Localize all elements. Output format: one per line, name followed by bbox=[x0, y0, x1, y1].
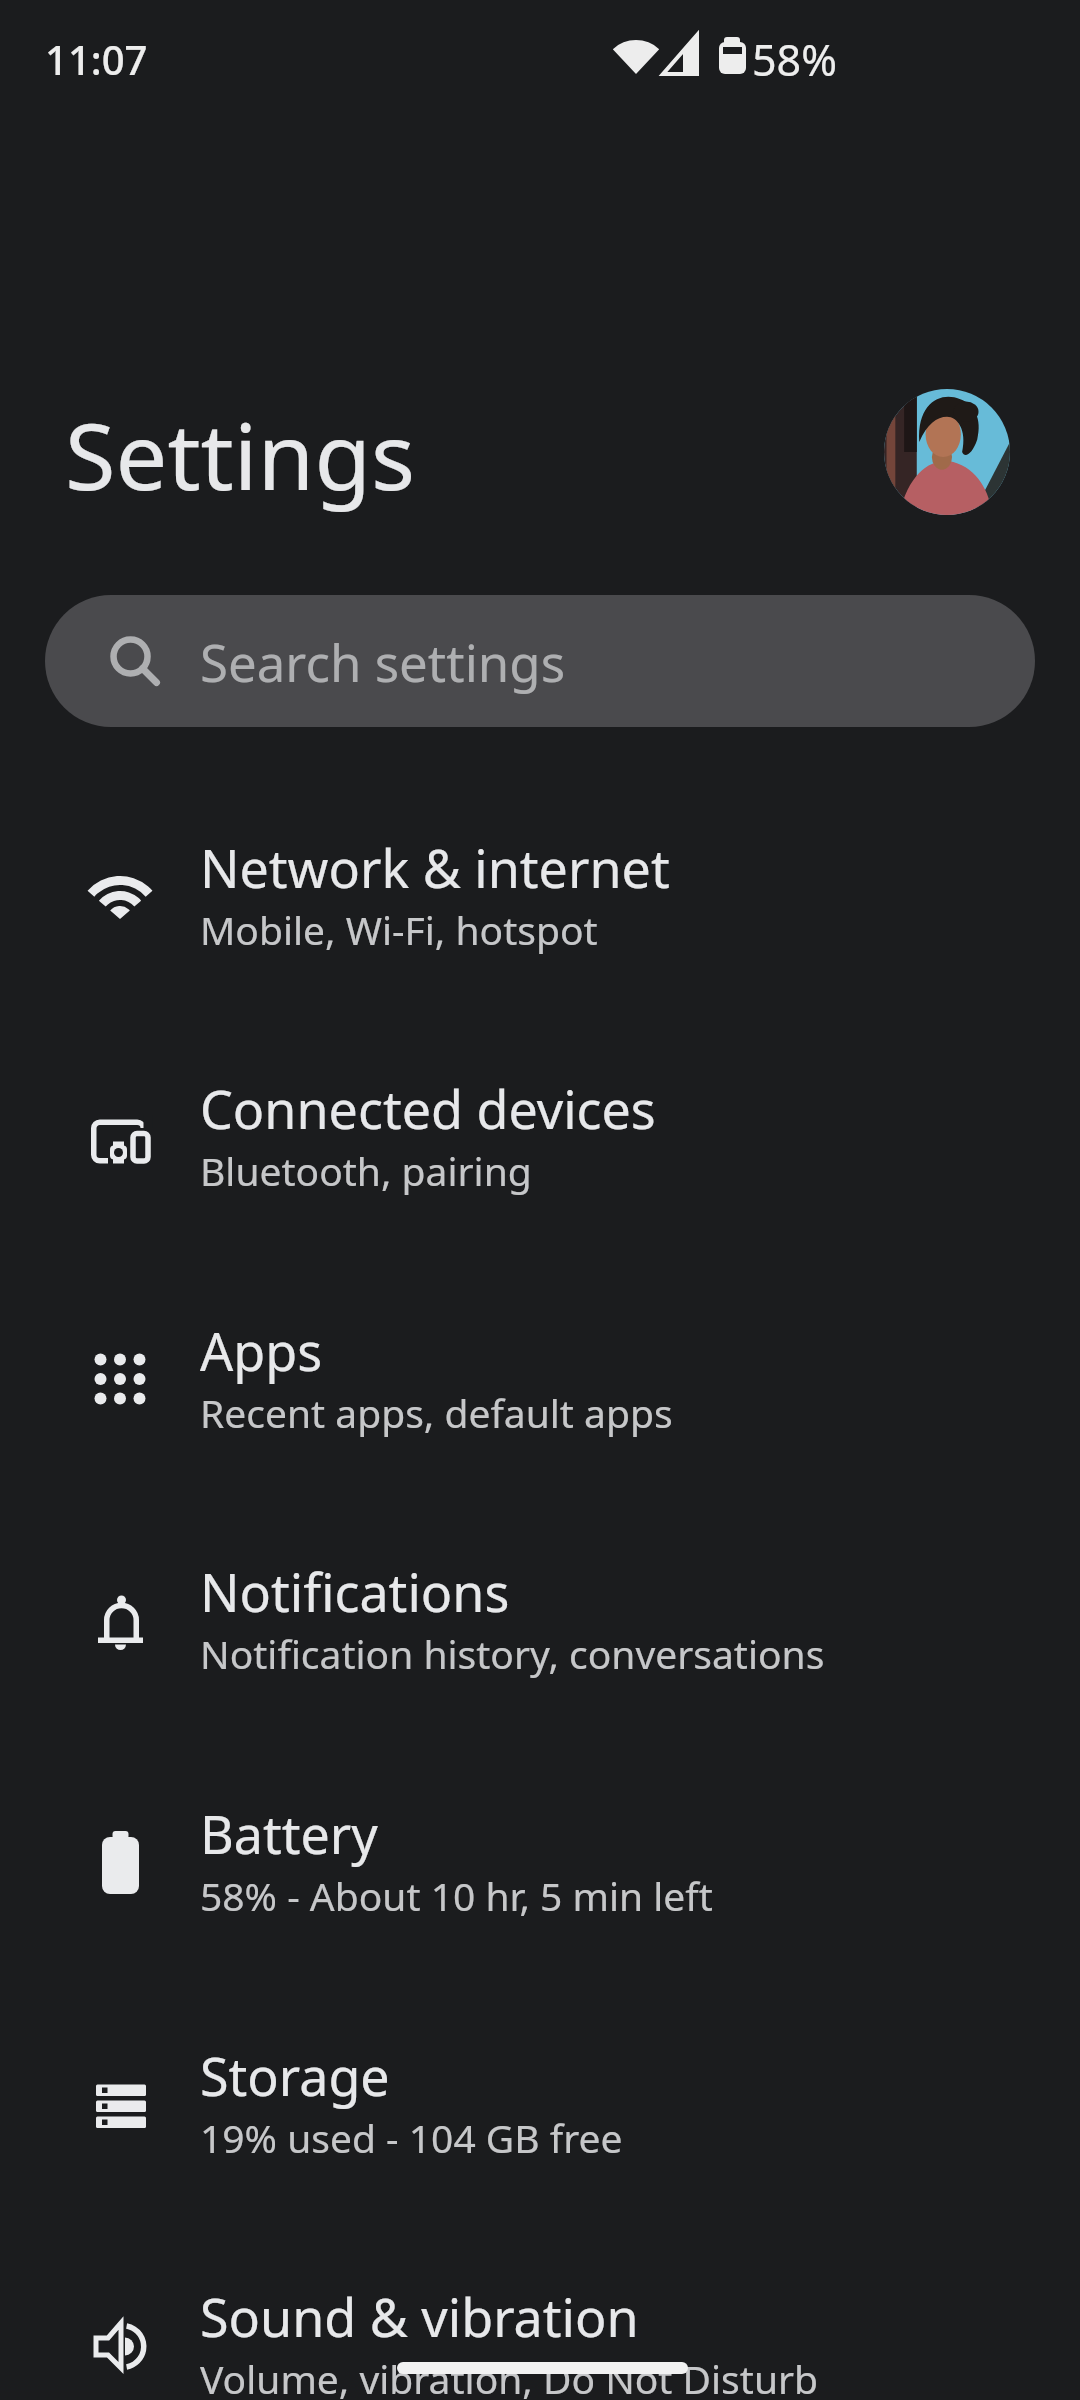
staticText: Mobile, Wi-Fi, hotspot bbox=[200, 903, 598, 956]
staticText: Network & internet bbox=[200, 832, 670, 903]
staticText: 58% bbox=[752, 30, 837, 89]
staticText: Volume, vibration, Do Not Disturb bbox=[200, 2352, 819, 2400]
staticText: Settings bbox=[65, 392, 416, 517]
button[interactable] bbox=[884, 389, 1010, 515]
staticText: 58% - About 10 hr, 5 min left bbox=[200, 1869, 713, 1922]
button[interactable]: Apps bbox=[0, 1263, 1080, 1505]
button[interactable]: Search settings bbox=[45, 595, 1035, 727]
staticText: Sound & vibration bbox=[200, 2281, 639, 2352]
staticText: 11:07 bbox=[45, 32, 148, 86]
staticText: Bluetooth, pairing bbox=[200, 1144, 532, 1197]
button[interactable]: Battery bbox=[0, 1746, 1080, 1988]
button[interactable]: Notifications bbox=[0, 1504, 1080, 1746]
button[interactable]: Network & internet bbox=[0, 780, 1080, 1022]
staticText: Apps bbox=[200, 1315, 323, 1386]
staticText: Connected devices bbox=[200, 1073, 656, 1144]
button[interactable]: Connected devices bbox=[0, 1021, 1080, 1263]
staticText: 19% used - 104 GB free bbox=[200, 2111, 623, 2164]
staticText: Search settings bbox=[200, 627, 566, 696]
staticText: Storage bbox=[200, 2040, 390, 2111]
button[interactable]: Sound & vibration bbox=[0, 2229, 1080, 2400]
staticText: Notifications bbox=[200, 1556, 510, 1627]
staticText: Recent apps, default apps bbox=[200, 1386, 673, 1439]
staticText: Notification history, conversations bbox=[200, 1627, 825, 1680]
button[interactable]: Storage bbox=[0, 1988, 1080, 2230]
staticText: Battery bbox=[200, 1798, 378, 1869]
